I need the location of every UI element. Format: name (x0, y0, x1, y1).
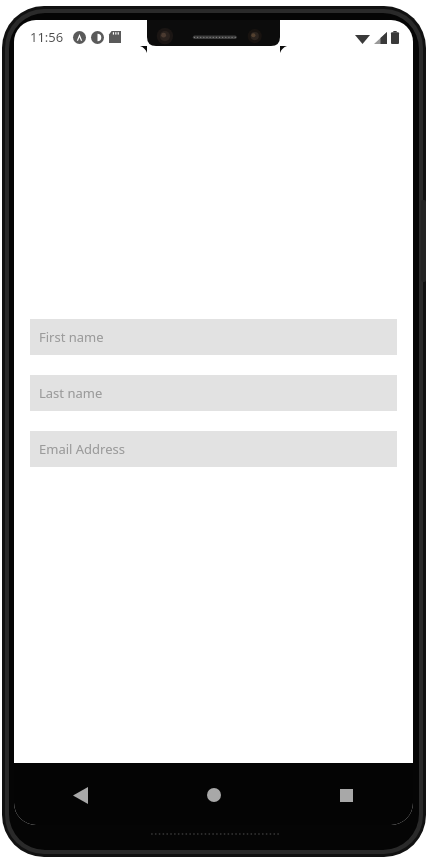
staticText: First name (39, 328, 104, 346)
button[interactable]: Last name (30, 375, 397, 411)
staticText: Last name (39, 384, 103, 402)
button[interactable]: Email Address (30, 431, 397, 467)
button[interactable]: First name (30, 319, 397, 355)
staticText: 11:56 (30, 28, 64, 46)
button[interactable]: Recent apps (280, 775, 413, 815)
staticText: Email Address (39, 440, 125, 458)
button[interactable]: Back (14, 775, 147, 815)
button[interactable]: Home (147, 775, 280, 815)
